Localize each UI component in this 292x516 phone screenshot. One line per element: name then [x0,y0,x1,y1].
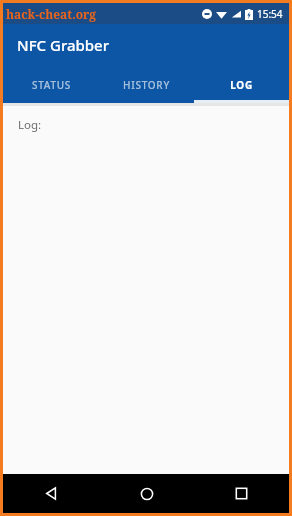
button[interactable]: STATUS [3,66,99,103]
button[interactable]: Home [99,474,194,513]
staticText: NFC Grabber [17,35,110,55]
staticText: STATUS [32,78,71,92]
staticText: LOG [230,78,253,92]
staticText: HISTORY [123,78,170,92]
button[interactable]: HISTORY [99,66,194,103]
staticText: 15:54 [257,7,283,21]
button[interactable]: LOG [194,66,289,103]
button[interactable]: Recents [194,474,289,513]
button[interactable]: Back [3,474,99,513]
staticText: Log: [18,117,42,133]
staticText: hack-cheat.org [6,6,97,22]
